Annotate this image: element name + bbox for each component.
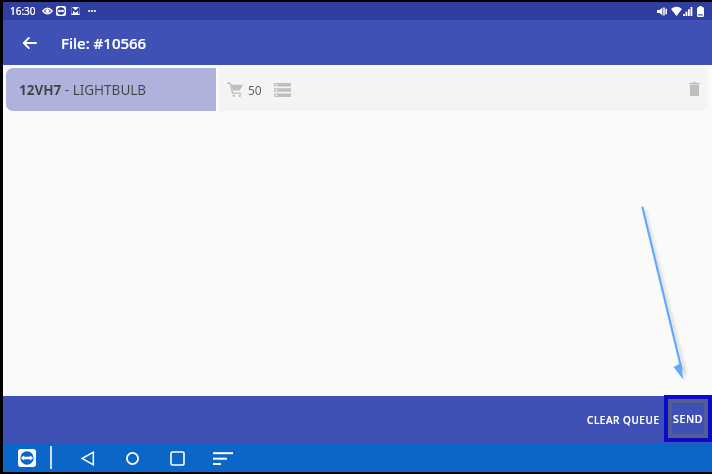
staticText: 16:30	[10, 4, 36, 18]
button[interactable]: TeamViewer	[18, 449, 36, 467]
staticText: 12VH7 - LIGHTBULB	[19, 81, 147, 99]
staticText: CLEAR QUEUE	[587, 413, 660, 427]
button[interactable]: Back	[74, 444, 102, 472]
button[interactable]: Home	[118, 444, 146, 472]
button[interactable]: Recents	[163, 444, 191, 472]
button[interactable]: CLEAR QUEUE	[571, 396, 664, 443]
button[interactable]: Delete	[681, 68, 708, 111]
button[interactable]: SEND	[672, 403, 704, 434]
button[interactable]: Menu	[209, 444, 237, 472]
staticText: 50	[248, 82, 262, 98]
staticText: SEND	[673, 412, 704, 426]
button[interactable]: 12VH7 - LIGHTBULB	[6, 68, 708, 111]
staticText: File: #10566	[61, 33, 147, 53]
button[interactable]: Back	[7, 20, 52, 65]
